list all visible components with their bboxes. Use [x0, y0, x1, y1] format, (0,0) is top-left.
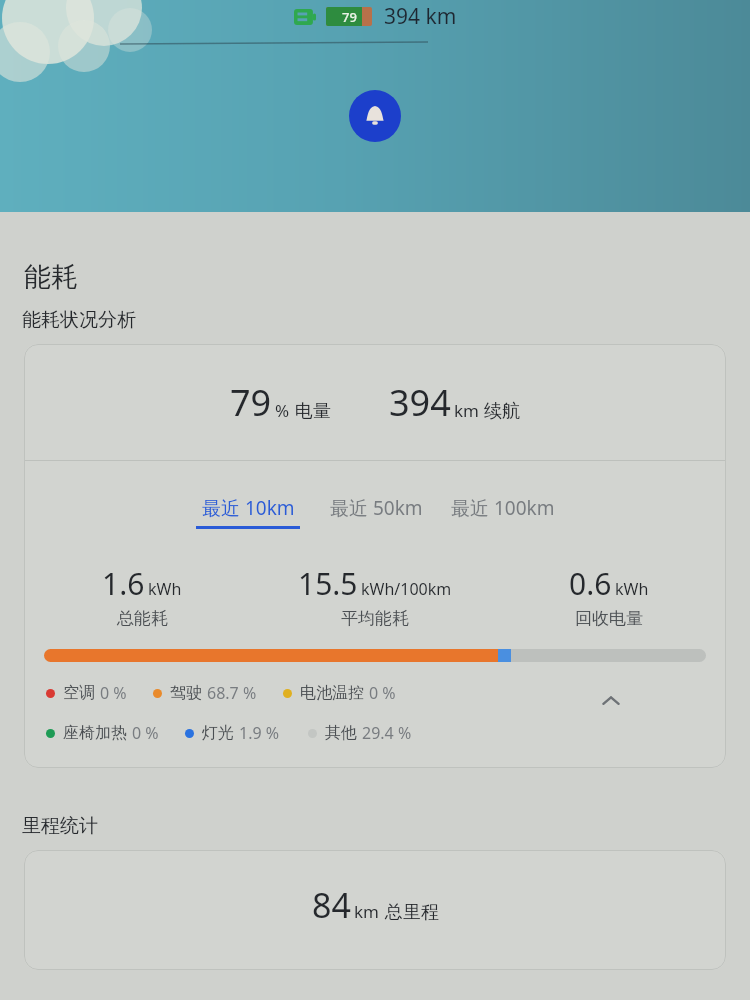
- staticText: 最近 50km: [330, 495, 423, 521]
- staticText: 0 %: [132, 722, 159, 744]
- staticText: %: [275, 399, 290, 422]
- staticText: kWh: [615, 578, 649, 600]
- button[interactable]: 其他: [308, 722, 412, 744]
- button[interactable]: 最近 100km: [451, 495, 555, 529]
- button[interactable]: 最近 50km: [330, 495, 423, 529]
- staticText: 回收电量: [575, 608, 643, 629]
- staticText: 其他: [325, 723, 357, 743]
- staticText: 最近 100km: [451, 495, 555, 521]
- button[interactable]: 驾驶: [153, 682, 257, 704]
- staticText: 394 km: [384, 2, 457, 31]
- staticText: 最近 10km: [202, 495, 295, 521]
- staticText: 续航: [484, 400, 520, 423]
- button[interactable]: 电池温控: [283, 682, 396, 704]
- staticText: 79: [230, 378, 272, 427]
- staticText: 0.6: [569, 563, 612, 604]
- staticText: km: [354, 900, 379, 923]
- button[interactable]: 最近 10km: [196, 495, 300, 529]
- staticText: 0 %: [100, 682, 127, 704]
- staticText: 1.9 %: [239, 722, 280, 744]
- button[interactable]: 座椅加热: [46, 722, 159, 744]
- staticText: km: [454, 399, 479, 422]
- staticText: 平均能耗: [341, 608, 409, 629]
- button[interactable]: 空调: [46, 682, 127, 704]
- staticText: 394: [389, 378, 451, 427]
- button[interactable]: 灯光: [185, 722, 280, 744]
- staticText: 84: [312, 882, 351, 928]
- staticText: 15.5: [298, 563, 358, 604]
- staticText: 79: [342, 8, 357, 26]
- staticText: 里程统计: [22, 814, 98, 838]
- staticText: 能耗状况分析: [22, 308, 136, 332]
- staticText: 灯光: [202, 723, 234, 743]
- staticText: 总里程: [385, 901, 439, 924]
- staticText: 0 %: [369, 682, 396, 704]
- staticText: 驾驶: [170, 683, 202, 703]
- staticText: 能耗: [24, 260, 78, 294]
- staticText: kWh: [148, 578, 182, 600]
- staticText: 29.4 %: [362, 722, 412, 744]
- staticText: 电量: [295, 400, 331, 423]
- staticText: 68.7 %: [207, 682, 257, 704]
- staticText: 总能耗: [117, 608, 168, 629]
- staticText: 1.6: [102, 563, 145, 604]
- button[interactable]: Collapse: [594, 684, 628, 718]
- staticText: 座椅加热: [63, 723, 127, 743]
- staticText: 空调: [63, 683, 95, 703]
- staticText: 电池温控: [300, 683, 364, 703]
- button[interactable]: Notifications: [349, 90, 401, 142]
- staticText: kWh/100km: [361, 578, 452, 600]
